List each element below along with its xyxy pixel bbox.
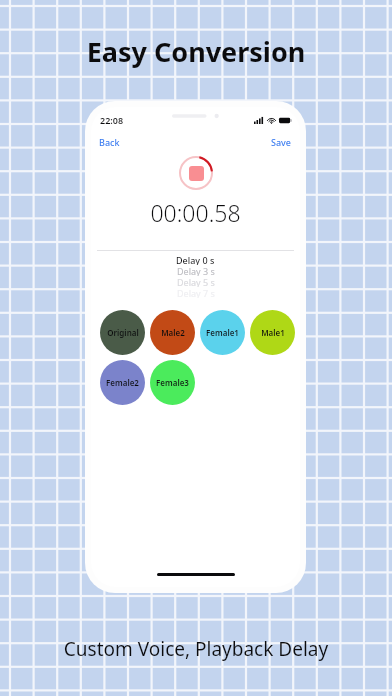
- staticText: 22:08: [100, 114, 124, 126]
- staticText: Delay 7 s: [177, 287, 215, 298]
- button[interactable]: Male2: [150, 310, 195, 355]
- button[interactable]: Delay 5 s: [91, 276, 300, 287]
- staticText: Custom Voice, Playback Delay: [0, 636, 392, 662]
- staticText: Male1: [261, 327, 285, 338]
- staticText: Delay 3 s: [177, 265, 215, 276]
- button[interactable]: Back: [91, 134, 128, 150]
- button[interactable]: Delay 0 s: [91, 254, 300, 265]
- staticText: Save: [271, 136, 292, 148]
- staticText: Delay 5 s: [177, 276, 215, 287]
- button[interactable]: Female1: [200, 310, 245, 355]
- button[interactable]: Stop recording: [178, 155, 214, 191]
- staticText: 00:00.58: [91, 197, 300, 228]
- staticText: Delay 0 s: [176, 254, 215, 265]
- button[interactable]: Original: [100, 310, 145, 355]
- button[interactable]: Female3: [150, 360, 195, 405]
- button[interactable]: Male1: [250, 310, 295, 355]
- button[interactable]: Female2: [100, 360, 145, 405]
- staticText: Female1: [206, 327, 239, 338]
- button[interactable]: Delay 3 s: [91, 265, 300, 276]
- staticText: Easy Conversion: [0, 33, 392, 70]
- button[interactable]: Save: [263, 134, 300, 150]
- staticText: Male2: [161, 327, 185, 338]
- staticText: Female3: [156, 377, 189, 388]
- staticText: Female2: [106, 377, 139, 388]
- staticText: Back: [99, 136, 120, 148]
- staticText: Original: [107, 327, 139, 338]
